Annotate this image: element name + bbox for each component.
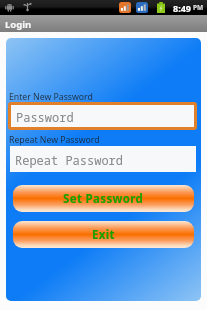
staticText: Password — [16, 109, 74, 125]
staticText: PM — [193, 3, 204, 12]
staticText: Repeat Password — [15, 152, 124, 168]
staticText: Repeat New Password — [9, 134, 100, 146]
button[interactable]: Set Password — [13, 185, 194, 212]
staticText: 8:49 — [173, 2, 191, 14]
staticText: Login — [5, 18, 32, 31]
staticText: Enter New Password — [9, 91, 93, 103]
button[interactable]: Repeat Password — [10, 146, 196, 172]
button[interactable]: Password — [11, 105, 194, 127]
button[interactable]: Exit — [13, 221, 194, 248]
staticText: Set Password — [63, 191, 144, 207]
staticText: Exit — [92, 227, 115, 243]
